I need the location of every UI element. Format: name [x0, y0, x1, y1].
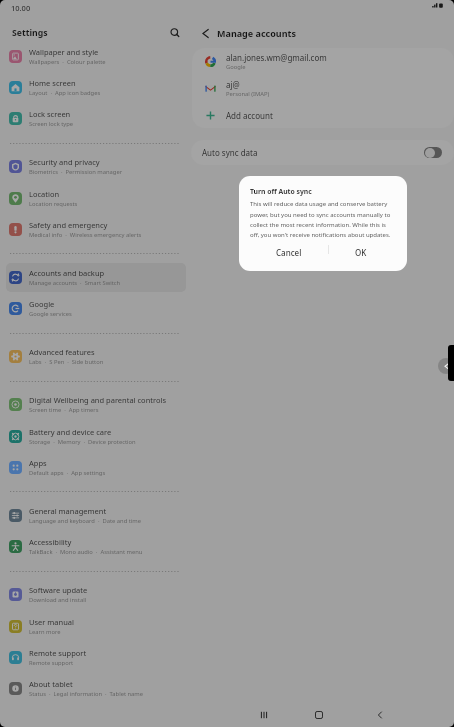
button[interactable]: Search [165, 23, 185, 43]
button[interactable]: General management [6, 501, 186, 530]
staticText: Battery and device care [29, 427, 112, 437]
staticText: Layout · App icon badges [29, 89, 101, 97]
button[interactable]: Auto sync data [191, 140, 454, 165]
button[interactable]: OK [328, 240, 394, 264]
staticText: Apps [29, 458, 47, 468]
button[interactable]: Remote support [6, 643, 186, 672]
button[interactable]: About tablet [6, 674, 186, 703]
staticText: Cancel [276, 247, 302, 258]
staticText: Biometrics · Permission manager [29, 168, 123, 176]
button[interactable]: Cancel [248, 240, 330, 264]
button[interactable]: Accessibility [6, 532, 186, 561]
button[interactable]: Digital Wellbeing and parental controls [6, 390, 186, 419]
button[interactable]: Advanced features [6, 342, 186, 371]
button[interactable]: Software update [6, 580, 186, 609]
button[interactable]: Wallpaper and style [6, 42, 186, 71]
staticText: Home screen [29, 78, 76, 88]
staticText: Location [29, 189, 60, 199]
button[interactable]: Back [370, 705, 390, 725]
button[interactable]: Safety and emergency [6, 215, 186, 244]
staticText: Wallpaper and style [29, 47, 99, 57]
staticText: Wallpapers · Colour palette [29, 58, 106, 66]
staticText: Default apps · App settings [29, 469, 106, 477]
staticText: Google [29, 299, 55, 309]
button[interactable]: Back [196, 24, 214, 42]
staticText: Location requests [29, 200, 78, 208]
staticText: alan.jones.wm@gmail.com [226, 52, 327, 63]
button[interactable]: Battery and device care [6, 422, 186, 451]
button[interactable]: Lock screen [6, 104, 186, 133]
button[interactable]: aj@ [192, 75, 454, 102]
staticText: Manage accounts · Smart Switch [29, 279, 121, 287]
staticText: Medical info · Wireless emergency alerts [29, 231, 142, 239]
staticText: About tablet [29, 679, 73, 689]
staticText: Screen time · App timers [29, 406, 99, 414]
staticText: Digital Wellbeing and parental controls [29, 395, 166, 405]
staticText: Personal (IMAP) [226, 90, 270, 98]
staticText: General management [29, 506, 107, 516]
button[interactable]: Edge panel [434, 354, 454, 378]
staticText: Safety and emergency [29, 220, 108, 230]
staticText: Labs · S Pen · Side button [29, 358, 104, 366]
staticText: Settings [12, 27, 48, 39]
button[interactable]: Home [309, 705, 329, 725]
staticText: Remote support [29, 648, 87, 658]
button[interactable]: Location [6, 184, 186, 213]
staticText: Screen lock type [29, 120, 74, 128]
staticText: Google [226, 63, 246, 71]
staticText: 10.00 [11, 3, 31, 13]
button[interactable]: Apps [6, 453, 186, 482]
button[interactable]: Recents [254, 705, 274, 725]
staticText: Security and privacy [29, 157, 100, 167]
staticText: Accessibility [29, 537, 72, 547]
staticText: TalkBack · Mono audio · Assistant menu [29, 548, 143, 556]
staticText: Advanced features [29, 347, 95, 357]
staticText: Accounts and backup [29, 268, 105, 278]
button[interactable]: Google [6, 294, 186, 323]
staticText: Download and install [29, 596, 87, 604]
button[interactable]: Home screen [6, 73, 186, 102]
staticText: OK [355, 247, 367, 258]
staticText: Manage accounts [217, 27, 296, 39]
staticText: Software update [29, 585, 88, 595]
staticText: Learn more [29, 628, 61, 636]
staticText: Auto sync data [202, 147, 258, 158]
staticText: Remote support [29, 659, 74, 667]
staticText: Turn off Auto sync [250, 187, 312, 196]
staticText: Language and keyboard · Date and time [29, 517, 142, 525]
staticText: Add account [226, 110, 273, 121]
staticText: Status · Legal information · Tablet name [29, 690, 144, 698]
button[interactable]: User manual [6, 612, 186, 641]
button[interactable]: Accounts and backup [6, 263, 186, 292]
staticText: Lock screen [29, 109, 71, 119]
button[interactable]: Add account [192, 102, 454, 128]
staticText: This will reduce data usage and conserve… [250, 200, 394, 239]
staticText: Google services [29, 310, 72, 318]
staticText: User manual [29, 617, 74, 627]
staticText: aj@ [226, 79, 240, 90]
staticText: Storage · Memory · Device protection [29, 438, 136, 446]
button[interactable]: alan.jones.wm@gmail.com [192, 48, 454, 75]
button[interactable]: Security and privacy [6, 152, 186, 181]
